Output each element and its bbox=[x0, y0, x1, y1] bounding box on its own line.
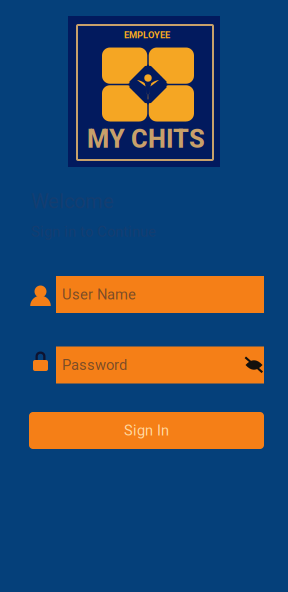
button[interactable]: Show password bbox=[239, 350, 269, 380]
staticText: Sign In bbox=[124, 422, 169, 439]
staticText: MY CHITS bbox=[87, 124, 205, 154]
staticText: User Name bbox=[62, 286, 136, 303]
staticText: Sign in to Continue bbox=[31, 223, 156, 240]
staticText: Password bbox=[62, 356, 127, 374]
staticText: Welcome bbox=[31, 190, 114, 213]
staticText: EMPLOYEE bbox=[124, 29, 170, 40]
button[interactable]: Sign In bbox=[29, 412, 264, 449]
